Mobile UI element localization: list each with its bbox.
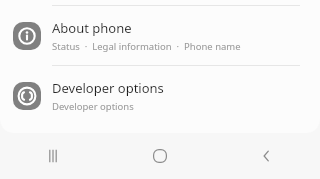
staticText: Developer options — [52, 79, 164, 97]
button[interactable]: Home — [106, 133, 213, 179]
staticText: About phone — [52, 19, 132, 37]
button[interactable]: About phone — [0, 6, 320, 65]
button[interactable]: Recent apps — [0, 133, 106, 179]
button[interactable]: Developer options — [0, 66, 320, 125]
staticText: Status · Legal information · Phone name — [52, 40, 241, 53]
button[interactable]: Back — [213, 133, 320, 179]
staticText: Developer options — [52, 100, 134, 113]
